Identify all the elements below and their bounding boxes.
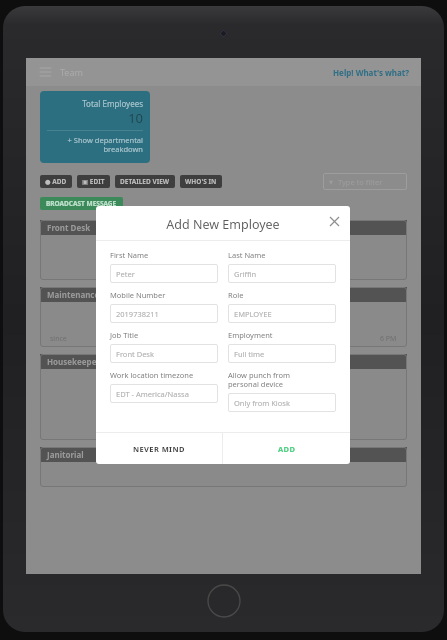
staticText: NEVER MIND (133, 444, 185, 454)
staticText: Griffin (234, 269, 257, 279)
staticText: Role (228, 290, 244, 300)
staticText: Last Name (228, 250, 266, 260)
staticText: Front Desk (47, 222, 91, 233)
staticText: ● ADD (45, 177, 67, 186)
staticText: Peter (116, 269, 135, 279)
staticText: ▼ (329, 179, 333, 185)
staticText: Front Desk (116, 349, 154, 359)
staticText: ▣ EDIT (82, 177, 105, 186)
button[interactable]: WHO'S IN (180, 175, 222, 188)
staticText: WHO'S IN (185, 177, 217, 186)
staticText: Mobile Number (110, 290, 166, 300)
staticText: Job Title (110, 330, 139, 340)
staticText: since (50, 334, 67, 344)
staticText: 6 PM (380, 334, 397, 344)
staticText: BROADCAST MESSAGE (46, 199, 117, 208)
button[interactable]: NEVER MIND (96, 433, 222, 464)
staticText: + Show departmental breakdown (67, 135, 143, 155)
staticText: EMPLOYEE (234, 309, 272, 319)
staticText: Add New Employee (96, 216, 350, 233)
staticText: Janitorial (47, 449, 84, 460)
staticText: DETAILED VIEW (120, 177, 170, 186)
button[interactable]: ● ADD (40, 175, 72, 188)
staticText: SP (141, 384, 158, 403)
button[interactable]: Peter (110, 264, 218, 283)
button[interactable]: Close (326, 213, 342, 229)
staticText: Total Employees (47, 98, 143, 109)
staticText: Type to filter (338, 177, 383, 187)
staticText: EDT - America/Nassa (116, 389, 189, 399)
staticText: Full time (234, 349, 265, 359)
button[interactable]: Menu (37, 64, 53, 80)
button[interactable]: Front Desk (40, 220, 407, 280)
staticText: Team (60, 66, 83, 78)
button[interactable]: Maintenance (40, 287, 407, 347)
staticText: since 10:50 am EDT (117, 425, 181, 435)
staticText: Only from Kiosk (234, 398, 290, 408)
button[interactable]: Total Employees (40, 91, 150, 163)
staticText: Maintenance (47, 289, 100, 300)
staticText: 10 (47, 109, 143, 127)
button[interactable]: ▼ (323, 173, 407, 190)
staticText: Work location timezone (110, 370, 194, 380)
button[interactable]: 2019738211 (110, 304, 218, 323)
button[interactable]: Only from Kiosk (228, 393, 336, 412)
button[interactable]: ▣ EDIT (77, 175, 110, 188)
button[interactable]: EMPLOYEE (228, 304, 336, 323)
staticText: Allow punch from personal device (228, 370, 291, 390)
button[interactable]: BROADCAST MESSAGE (40, 197, 123, 210)
button[interactable]: EDT - America/Nassa (110, 384, 218, 403)
button[interactable]: DETAILED VIEW (115, 175, 175, 188)
staticText: 2019738211 (116, 309, 159, 319)
button[interactable]: Griffin (228, 264, 336, 283)
button[interactable]: Full time (228, 344, 336, 363)
staticText: Housekeeper (47, 356, 101, 367)
button[interactable]: Front Desk (110, 344, 218, 363)
button[interactable]: Housekeeper (40, 354, 407, 440)
staticText: Help! What's what? (333, 67, 410, 78)
button[interactable]: ADD (223, 433, 350, 464)
staticText: First Name (110, 250, 149, 260)
button[interactable]: Help! What's what? (333, 67, 410, 78)
staticText: ADD (278, 444, 296, 454)
button[interactable]: Janitorial (40, 447, 407, 487)
staticText: Employment (228, 330, 273, 340)
